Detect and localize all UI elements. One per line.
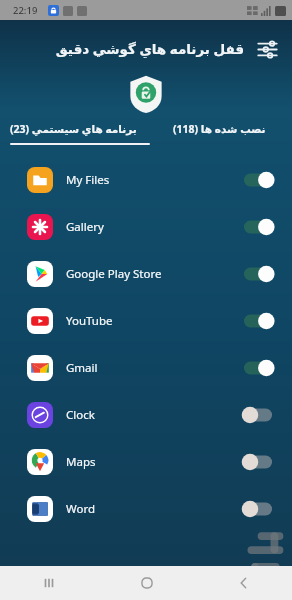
staticText: Word bbox=[66, 501, 242, 517]
staticText: Gmail bbox=[66, 360, 242, 376]
button[interactable]: Maps bbox=[0, 438, 292, 485]
button[interactable]: Recent apps bbox=[0, 566, 98, 600]
button[interactable]: Settings bbox=[252, 34, 282, 64]
staticText: قفل برنامه هاي گوشي دقيق bbox=[14, 40, 244, 58]
button[interactable]: My Files bbox=[0, 156, 292, 203]
button[interactable]: Gmail bbox=[0, 344, 292, 391]
button[interactable]: نصب شده ها (118) bbox=[146, 115, 292, 143]
button[interactable]: Lock enabled bbox=[242, 171, 274, 189]
button[interactable]: Lock disabled bbox=[242, 453, 274, 471]
button[interactable]: Google Play Store bbox=[0, 250, 292, 297]
button[interactable]: Lock enabled bbox=[242, 359, 274, 377]
staticText: YouTube bbox=[66, 313, 242, 329]
staticText: 22:19 bbox=[13, 4, 38, 17]
button[interactable]: Home bbox=[98, 566, 195, 600]
button[interactable]: برنامه هاي سيستمي (23) bbox=[0, 115, 146, 143]
button[interactable]: Word bbox=[0, 485, 292, 532]
button[interactable]: Lock disabled bbox=[242, 500, 274, 518]
staticText: Google Play Store bbox=[66, 266, 242, 282]
button[interactable]: Lock enabled bbox=[242, 218, 274, 236]
button[interactable]: YouTube bbox=[0, 297, 292, 344]
staticText: Gallery bbox=[66, 219, 242, 235]
staticText: نصب شده ها (118) bbox=[173, 122, 266, 136]
staticText: Clock bbox=[66, 407, 242, 423]
staticText: برنامه هاي سيستمي (23) bbox=[10, 122, 137, 136]
staticText: My Files bbox=[66, 172, 242, 188]
button[interactable]: Gallery bbox=[0, 203, 292, 250]
button[interactable]: Back bbox=[195, 566, 292, 600]
button[interactable]: Lock enabled bbox=[242, 312, 274, 330]
button[interactable]: Lock enabled bbox=[242, 265, 274, 283]
staticText: Maps bbox=[66, 454, 242, 470]
button[interactable]: Clock bbox=[0, 391, 292, 438]
button[interactable]: Lock disabled bbox=[242, 406, 274, 424]
